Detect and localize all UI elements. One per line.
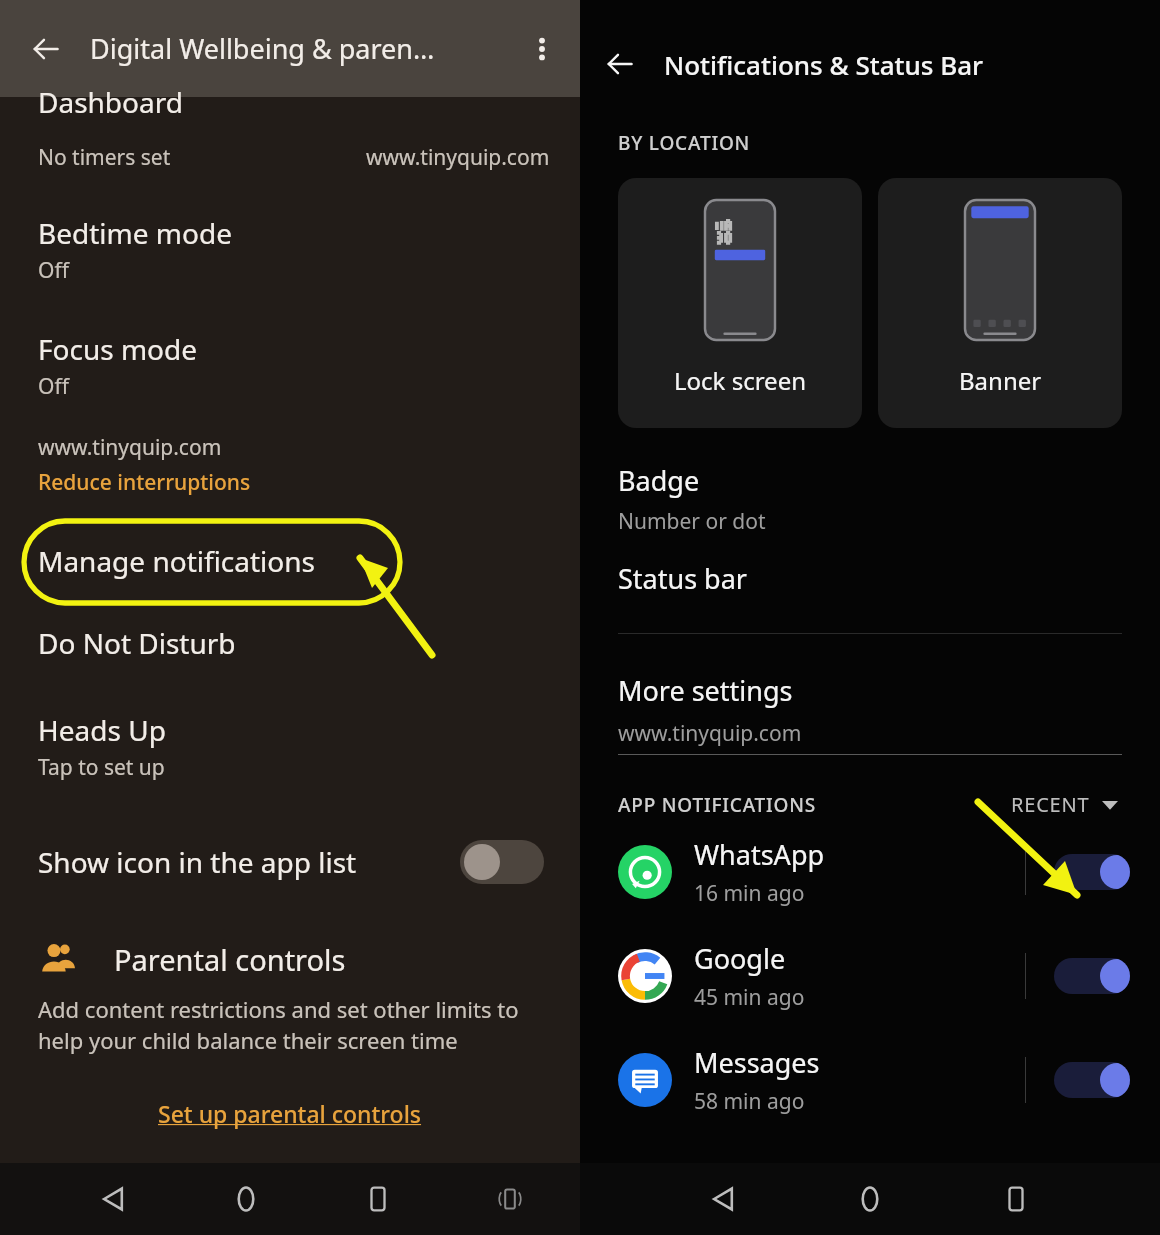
button[interactable]: Toggle Messages notifications [1054,1062,1130,1098]
staticText: www.tinyquip.com [38,433,222,462]
staticText: Manage notifications [38,542,315,580]
staticText: Notifications & Status Bar [664,47,984,82]
staticText: Add content restrictions and set other l… [38,994,519,1056]
staticText: Set up parental controls [158,1098,422,1129]
staticText: RECENT [1011,791,1090,818]
staticText: www.tinyquip.com [366,143,550,172]
staticText: Google [694,940,786,977]
staticText: Messages [694,1044,820,1081]
button[interactable]: Recents [352,1173,404,1225]
button[interactable]: Do Not Disturb [0,615,580,671]
staticText: Off [38,372,69,401]
button[interactable]: More options [518,25,566,73]
button[interactable]: Banner [878,178,1122,428]
staticText: Lock screen [674,364,807,397]
staticText: Tap to set up [38,753,165,782]
button[interactable]: Bedtime mode [0,214,580,285]
staticText: 16 min ago [694,879,805,908]
button[interactable]: Toggle Google notifications [1054,958,1130,994]
staticText: Parental controls [114,940,346,979]
staticText: 45 min ago [694,983,805,1012]
staticText: APP NOTIFICATIONS [618,792,817,818]
staticText: More settings [618,672,793,709]
button[interactable]: Back [594,38,646,90]
button[interactable]: Home [844,1173,896,1225]
staticText: Banner [959,364,1042,397]
staticText: Reduce interruptions [38,468,251,497]
staticText: Badge [618,462,700,499]
button[interactable]: Parental controls [0,938,580,980]
staticText: Digital Wellbeing & paren… [90,30,518,67]
button[interactable]: WhatsApp [580,836,1160,908]
button[interactable]: Home [220,1173,272,1225]
button[interactable]: Recents [990,1173,1042,1225]
button[interactable]: Status bar [580,560,1160,597]
staticText: www.tinyquip.com [618,719,802,748]
button[interactable]: Back [20,23,72,75]
staticText: Do Not Disturb [38,624,236,662]
button[interactable]: Messages [580,1044,1160,1116]
staticText: Heads Up [38,711,166,749]
staticText: Show icon in the app list [38,843,460,881]
button[interactable]: Google [580,940,1160,1012]
button[interactable]: Manage notifications [0,513,580,609]
staticText: Number or dot [618,507,766,536]
button[interactable]: Focus mode [0,330,580,401]
staticText: Off [38,256,69,285]
button[interactable]: Toggle WhatsApp notifications [1054,854,1130,890]
button[interactable]: Heads Up [0,711,580,782]
staticText: BY LOCATION [618,130,751,156]
staticText: 58 min ago [694,1087,805,1116]
button[interactable]: RECENT [1007,787,1122,822]
staticText: WhatsApp [694,836,825,873]
staticText: Focus mode [38,330,198,368]
button[interactable]: Back [698,1173,750,1225]
button[interactable]: Show icon in the app list [0,830,580,894]
button[interactable]: Lock screen [618,178,862,428]
staticText: No timers set [38,143,171,172]
button[interactable]: Rotate screen [484,1173,536,1225]
staticText: Dashboard [38,83,183,121]
staticText: Status bar [618,560,748,597]
button[interactable]: Badge [580,462,1160,536]
button[interactable]: Back [88,1173,140,1225]
staticText: Bedtime mode [38,214,232,252]
button[interactable]: Set up parental controls [152,1092,428,1135]
